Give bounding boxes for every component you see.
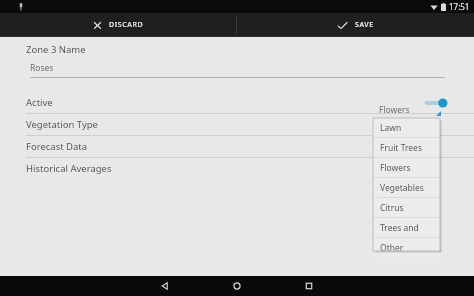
staticText: Flowers bbox=[379, 104, 410, 116]
button[interactable]: Roses bbox=[30, 62, 445, 78]
button[interactable]: Home bbox=[214, 276, 260, 296]
staticText: Fruit Trees bbox=[380, 142, 422, 154]
staticText: Lawn bbox=[380, 122, 402, 134]
button[interactable]: Back bbox=[142, 276, 188, 296]
button[interactable]: Lawn bbox=[373, 118, 440, 137]
staticText: Roses bbox=[30, 62, 54, 74]
button[interactable]: Vegetation Type bbox=[0, 114, 474, 135]
staticText: Other bbox=[380, 242, 404, 254]
staticText: SAVE bbox=[355, 20, 374, 30]
staticText: DISCARD bbox=[109, 20, 144, 30]
button[interactable]: Fruit Trees bbox=[373, 138, 440, 157]
button[interactable]: Citrus bbox=[373, 198, 440, 217]
button[interactable]: Forecast Data bbox=[0, 136, 474, 157]
button[interactable]: SAVE bbox=[237, 13, 474, 37]
staticText: Vegetation Type bbox=[26, 118, 98, 131]
button[interactable]: Active bbox=[0, 92, 474, 113]
button[interactable]: Flowers bbox=[373, 158, 440, 177]
button[interactable]: Trees and Bushes bbox=[373, 218, 440, 237]
button[interactable]: Flowers bbox=[379, 102, 443, 118]
staticText: Active bbox=[26, 96, 53, 109]
button[interactable]: Vegetables bbox=[373, 178, 440, 197]
button[interactable]: DISCARD bbox=[0, 13, 236, 37]
staticText: Citrus bbox=[380, 202, 404, 214]
staticText: Vegetables bbox=[380, 182, 424, 194]
staticText: Trees and Bushes bbox=[380, 222, 440, 234]
button[interactable]: Other bbox=[373, 238, 440, 257]
staticText: Historical Averages bbox=[26, 162, 112, 175]
staticText: Zone 3 Name bbox=[26, 43, 86, 56]
button[interactable]: Recent apps bbox=[286, 276, 332, 296]
button[interactable]: Active toggle bbox=[422, 96, 448, 110]
button[interactable]: Historical Averages bbox=[0, 158, 474, 179]
staticText: Flowers bbox=[380, 162, 411, 174]
staticText: 17:51 bbox=[449, 1, 470, 12]
staticText: Forecast Data bbox=[26, 140, 88, 153]
